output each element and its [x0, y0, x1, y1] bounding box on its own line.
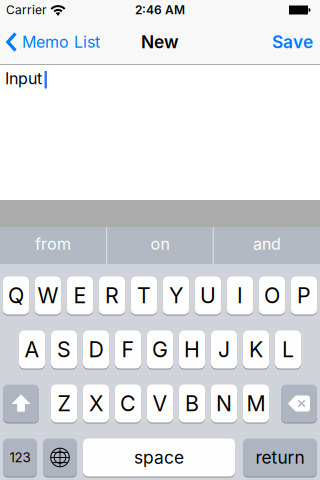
staticText: P	[297, 283, 311, 308]
staticText: I	[237, 283, 243, 308]
button[interactable]: F	[115, 330, 141, 369]
button[interactable]: T	[131, 276, 157, 315]
staticText: New	[141, 32, 179, 52]
staticText: Input	[5, 69, 42, 88]
button[interactable]: Shift	[3, 384, 39, 423]
staticText: K	[249, 337, 263, 362]
button[interactable]: U	[195, 276, 221, 315]
button[interactable]: H	[179, 330, 205, 369]
staticText: X	[89, 391, 103, 416]
staticText: L	[282, 337, 294, 362]
button[interactable]: on	[107, 227, 213, 264]
staticText: M	[246, 391, 265, 416]
button[interactable]: O	[259, 276, 285, 315]
staticText: D	[88, 337, 103, 362]
button[interactable]: return	[243, 438, 317, 477]
staticText: F	[121, 337, 134, 362]
button[interactable]: Next keyboard	[43, 438, 77, 477]
button[interactable]: N	[211, 384, 237, 423]
button[interactable]: Memo List	[0, 32, 100, 52]
button[interactable]: W	[35, 276, 61, 315]
staticText: S	[57, 337, 71, 362]
staticText: Carrier	[6, 3, 47, 17]
staticText: Memo List	[22, 33, 100, 51]
button[interactable]: I	[227, 276, 253, 315]
button[interactable]: K	[243, 330, 269, 369]
staticText: T	[137, 283, 151, 308]
button[interactable]: and	[214, 227, 320, 264]
button[interactable]: B	[179, 384, 205, 423]
button[interactable]: S	[51, 330, 77, 369]
staticText: J	[218, 337, 230, 362]
staticText: Save	[272, 32, 313, 52]
button[interactable]: G	[147, 330, 173, 369]
staticText: U	[200, 283, 216, 308]
staticText: N	[216, 391, 232, 416]
staticText: 2:46 AM	[135, 3, 185, 17]
button[interactable]: Delete	[281, 384, 317, 423]
button[interactable]: X	[83, 384, 109, 423]
staticText: W	[37, 283, 58, 308]
button[interactable]: 123	[3, 438, 37, 477]
staticText: Y	[169, 283, 183, 308]
staticText: and	[253, 235, 281, 253]
button[interactable]: V	[147, 384, 173, 423]
staticText: space	[134, 447, 184, 468]
staticText: O	[264, 283, 280, 308]
staticText: V	[152, 391, 167, 416]
staticText: Z	[57, 391, 70, 416]
button[interactable]: from	[0, 227, 106, 264]
staticText: on	[150, 235, 169, 253]
button[interactable]: Save	[272, 32, 320, 52]
button[interactable]: R	[99, 276, 125, 315]
staticText: G	[152, 337, 168, 362]
button[interactable]: M	[243, 384, 269, 423]
staticText: Q	[8, 283, 24, 308]
staticText: A	[24, 337, 39, 362]
staticText: 123	[9, 450, 30, 465]
button[interactable]: Q	[3, 276, 29, 315]
staticText: from	[35, 235, 71, 253]
staticText: R	[105, 283, 119, 308]
button[interactable]: space	[83, 438, 235, 477]
button[interactable]: A	[19, 330, 45, 369]
button[interactable]: Y	[163, 276, 189, 315]
button[interactable]: D	[83, 330, 109, 369]
staticText: H	[184, 337, 200, 362]
staticText: E	[73, 283, 86, 308]
button[interactable]: C	[115, 384, 141, 423]
button[interactable]: Z	[51, 384, 77, 423]
button[interactable]: L	[275, 330, 301, 369]
staticText: B	[185, 391, 199, 416]
button[interactable]: J	[211, 330, 237, 369]
button[interactable]: P	[291, 276, 317, 315]
staticText: C	[120, 391, 136, 416]
button[interactable]: E	[67, 276, 93, 315]
staticText: return	[255, 447, 304, 468]
